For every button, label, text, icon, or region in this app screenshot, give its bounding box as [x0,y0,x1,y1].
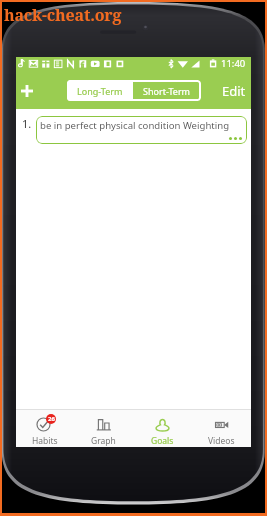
button[interactable]: Videos [192,410,251,447]
staticText: Habits [32,435,58,447]
button[interactable]: Short-Term [133,80,201,101]
staticText: Graph [91,435,116,447]
staticText: hack-cheat.org [4,4,122,26]
staticText: be in perfect physical condition Weighti… [40,119,230,132]
button[interactable]: Long-Term [67,80,133,101]
staticText: 1. [22,116,32,131]
button[interactable]: 26 [16,410,74,447]
staticText: Long-Term [77,85,123,97]
button[interactable]: Graph [74,410,133,447]
staticText: 26 [48,415,55,423]
button[interactable]: Edit [214,70,251,109]
staticText: Goals [151,435,174,447]
staticText: Videos [208,435,235,447]
staticText: 11:40 [221,57,246,70]
button[interactable]: be in perfect physical condition Weighti… [36,116,247,144]
staticText: Edit [222,82,246,100]
button[interactable]: Add goal [16,70,38,109]
button[interactable]: Goals [133,410,192,447]
staticText: Short-Term [143,85,191,97]
